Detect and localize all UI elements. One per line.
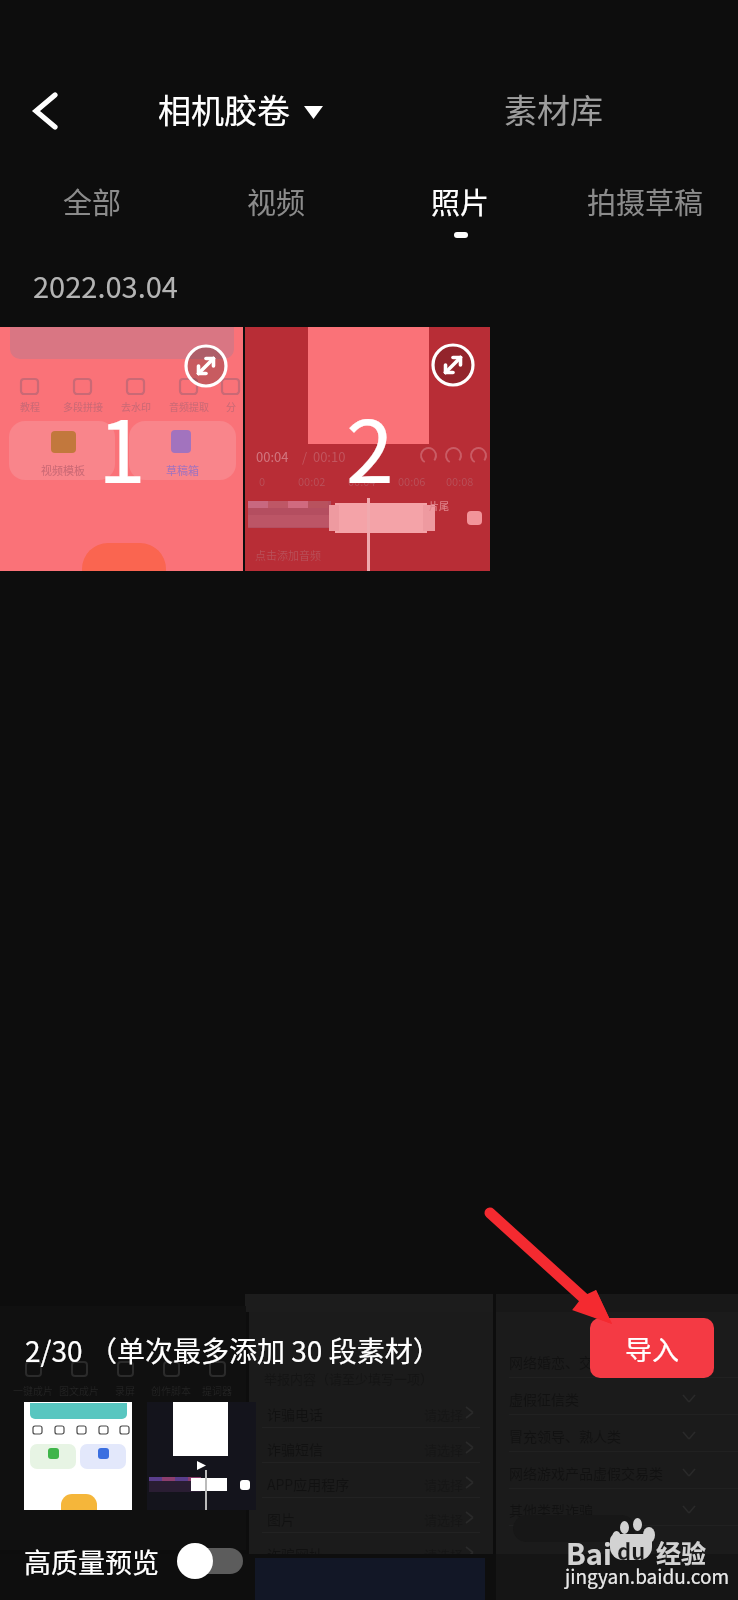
staticText: jingyan.baidu.com [565,1562,730,1590]
button[interactable]: 教程 [0,327,243,571]
staticText: 诈骗短信 [267,1439,323,1459]
button[interactable]: 00:04 [245,327,490,571]
staticText: 片尾 [429,498,449,512]
staticText: 去水印 [121,399,151,413]
staticText: 提词器 [202,1383,232,1397]
staticText: 拍摄草稿 [587,180,704,222]
staticText: 分 [226,399,236,413]
button[interactable] [24,1402,132,1510]
staticText: 导入 [625,1329,679,1368]
button[interactable]: 素材库 [504,85,603,133]
button[interactable] [147,1402,256,1510]
staticText: 图文成片 [59,1383,99,1397]
staticText: 相机胶卷 [158,85,290,133]
button[interactable]: 拍摄草稿 [553,180,738,240]
button[interactable]: Expand preview [431,343,475,387]
staticText: 高质量预览 [24,1542,159,1581]
staticText: （单次最多添加 30 段素材） [89,1330,441,1371]
staticText: 视频 [247,180,306,222]
staticText: 点击添加音频 [255,547,321,563]
staticText: 2022.03.04 [33,264,178,306]
staticText: 照片 [431,180,490,222]
staticText: 网络婚恋、交友类 [509,1352,621,1372]
staticText: 音频提取 [169,399,209,413]
staticText: 经验 [656,1534,707,1570]
staticText: 网络游戏产品虚假交易类 [509,1463,663,1483]
button[interactable]: Expand preview [184,344,228,388]
staticText: 00:04 [256,447,289,466]
staticText: 多段拼接 [63,399,103,413]
staticText: 诈骗网址 [267,1544,323,1564]
staticText: 00:02 [298,473,326,489]
staticText: Bai [566,1531,612,1573]
staticText: 教程 [20,399,40,413]
button[interactable]: 全部 [0,180,184,240]
staticText: 00:08 [446,473,474,489]
staticText: 录屏 [115,1383,135,1397]
staticText: 图片 [267,1509,295,1529]
staticText: 草稿箱 [166,462,199,478]
button[interactable]: 高质量预览 [24,1541,243,1581]
staticText: 一键成片 [13,1383,53,1397]
staticText: 00:04 [348,473,376,489]
staticText: APP应用程序 [267,1474,350,1494]
staticText: du [617,1534,646,1560]
staticText: 诈骗电话 [267,1404,323,1424]
button[interactable]: 导入 [590,1318,714,1378]
button[interactable]: 视频 [184,180,368,240]
staticText: 其他类型诈骗 [509,1500,593,1520]
button[interactable]: Back [11,77,79,145]
staticText: 素材库 [504,85,603,133]
button[interactable]: 相机胶卷 [158,85,323,133]
staticText: 视频模板 [41,462,85,478]
staticText: 请选择 [424,1545,464,1564]
staticText: / 00:10 [302,447,346,466]
staticText: 2/30 [25,1330,83,1371]
button[interactable]: 照片 [368,180,553,240]
staticText: 创作脚本 [151,1383,191,1397]
staticText: 0 [259,473,266,489]
staticText: 全部 [63,180,122,222]
staticText: 2 [346,383,394,508]
staticText: 00:06 [398,473,426,489]
staticText: 虚假征信类 [509,1389,579,1409]
staticText: 1 [98,383,146,508]
